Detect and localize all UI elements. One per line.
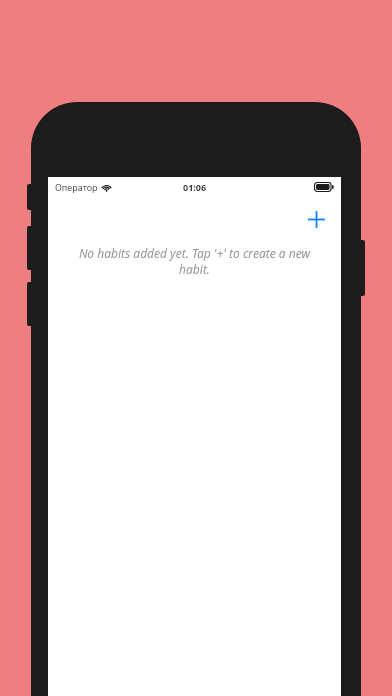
button[interactable]: Add habit bbox=[299, 202, 333, 236]
staticText: No habits added yet. Tap '+' to create a… bbox=[72, 245, 317, 277]
staticText: Оператор bbox=[55, 181, 98, 193]
staticText: 01:06 bbox=[183, 181, 207, 193]
